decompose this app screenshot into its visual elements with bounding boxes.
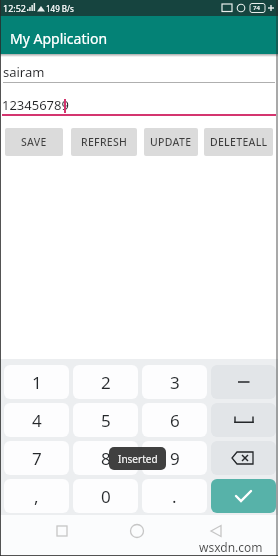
staticText: 2 (101, 371, 111, 394)
button[interactable]: 123456789 (0, 88, 278, 116)
staticText: 74 (253, 4, 260, 12)
button[interactable] (211, 365, 276, 399)
staticText: 6 (170, 409, 180, 432)
staticText: , (34, 485, 39, 508)
button[interactable] (204, 519, 228, 543)
button[interactable]: . (142, 479, 207, 513)
button[interactable]: 0 (73, 479, 138, 513)
button[interactable]: 4 (4, 403, 69, 437)
staticText: 8 (101, 447, 111, 470)
button[interactable]: 1 (4, 365, 69, 399)
button[interactable]: sairam (0, 57, 278, 84)
staticText: . (172, 485, 177, 508)
button[interactable]: UPDATE (144, 128, 198, 156)
staticText: 5 (101, 409, 111, 432)
button[interactable]: 6 (142, 403, 207, 437)
button[interactable] (211, 403, 276, 437)
button[interactable]: 7 (4, 441, 69, 475)
staticText: Inserted (118, 452, 158, 466)
staticText: sairam (3, 63, 45, 81)
staticText: 0 (101, 485, 111, 508)
staticText: My Application (10, 29, 108, 48)
button[interactable] (211, 441, 276, 475)
button[interactable] (125, 519, 149, 543)
staticText: REFRESH (81, 135, 128, 149)
button[interactable]: SAVE (5, 128, 63, 156)
staticText: wsxdn.com (199, 539, 263, 555)
button[interactable]: 8 (73, 441, 138, 475)
staticText: 9 (170, 447, 180, 470)
staticText: SAVE (21, 135, 47, 149)
staticText: 12:52 (3, 2, 27, 14)
staticText: 1 (32, 371, 42, 394)
staticText: 3 (170, 371, 180, 394)
button[interactable]: REFRESH (71, 128, 137, 156)
staticText: 149 B/s (46, 3, 74, 14)
button[interactable]: 2 (73, 365, 138, 399)
staticText: 123456789 (2, 96, 69, 114)
button[interactable]: 3 (142, 365, 207, 399)
staticText: 4 (32, 409, 42, 432)
staticText: UPDATE (150, 135, 192, 149)
button[interactable] (50, 519, 74, 543)
button[interactable]: 9 (142, 441, 207, 475)
button[interactable] (211, 479, 276, 513)
staticText: DELETEALL (210, 135, 268, 149)
staticText: 7 (32, 447, 42, 470)
button[interactable]: , (4, 479, 69, 513)
button[interactable]: 5 (73, 403, 138, 437)
button[interactable]: DELETEALL (204, 128, 273, 156)
